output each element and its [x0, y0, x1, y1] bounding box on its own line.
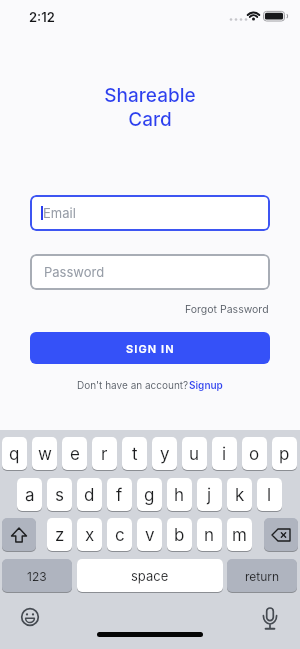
button[interactable]: q [2, 437, 27, 471]
button[interactable]: e [62, 437, 87, 471]
button[interactable]: h [167, 478, 192, 512]
button[interactable]: r [92, 437, 117, 471]
staticText: h [174, 485, 185, 506]
button[interactable]: o [242, 437, 267, 471]
button[interactable]: p [272, 437, 297, 471]
button[interactable]: c [107, 518, 132, 552]
staticText: i [222, 444, 227, 465]
staticText: SIGN IN [126, 342, 175, 355]
button[interactable]: Forgot Password [185, 303, 269, 316]
button[interactable]: a [17, 478, 42, 512]
button[interactable]: space [77, 559, 223, 593]
staticText: m [232, 525, 247, 546]
button[interactable] [2, 518, 36, 552]
button[interactable]: b [167, 518, 192, 552]
button[interactable] [264, 518, 298, 552]
button[interactable]: 123 [2, 559, 72, 593]
staticText: p [279, 444, 290, 465]
button[interactable]: n [197, 518, 222, 552]
staticText: 2:12 [29, 9, 55, 25]
button[interactable]: x [77, 518, 102, 552]
staticText: g [144, 485, 155, 506]
staticText: y [160, 444, 170, 465]
staticText: space [131, 568, 169, 584]
button[interactable]: t [122, 437, 147, 471]
staticText: f [116, 485, 123, 506]
staticText: d [84, 485, 95, 506]
staticText: r [101, 444, 108, 465]
staticText: Signup [189, 379, 223, 391]
button[interactable]: u [182, 437, 207, 471]
button[interactable]: z [47, 518, 72, 552]
button[interactable]: y [152, 437, 177, 471]
button[interactable]: i [212, 437, 237, 471]
button[interactable]: w [32, 437, 57, 471]
staticText: Email [43, 205, 76, 221]
button[interactable] [256, 606, 284, 636]
button[interactable]: f [107, 478, 132, 512]
staticText: Forgot Password [185, 303, 269, 316]
staticText: Don't have an account? [77, 379, 189, 391]
staticText: o [249, 444, 260, 465]
staticText: b [174, 525, 185, 546]
button[interactable]: d [77, 478, 102, 512]
staticText: v [145, 525, 155, 546]
staticText: Password [44, 264, 105, 280]
staticText: return [245, 569, 280, 584]
staticText: s [55, 485, 64, 506]
button[interactable] [16, 603, 44, 631]
button[interactable]: g [137, 478, 162, 512]
staticText: k [235, 485, 245, 506]
button[interactable]: v [137, 518, 162, 552]
staticText: Shareable Card [104, 84, 196, 131]
staticText: 123 [27, 569, 47, 584]
staticText: l [267, 485, 272, 506]
staticText: u [189, 444, 200, 465]
button[interactable]: m [227, 518, 252, 552]
button[interactable]: SIGN IN [30, 332, 270, 364]
button[interactable]: Password [30, 254, 270, 290]
button[interactable]: return [227, 559, 297, 593]
staticText: e [70, 444, 80, 465]
staticText: n [204, 525, 215, 546]
button[interactable]: j [197, 478, 222, 512]
staticText: a [25, 485, 35, 506]
staticText: t [132, 444, 138, 465]
staticText: j [207, 485, 212, 506]
staticText: q [9, 444, 20, 465]
staticText: c [115, 525, 125, 546]
button[interactable]: Signup [189, 379, 223, 391]
button[interactable]: l [257, 478, 282, 512]
button[interactable]: s [47, 478, 72, 512]
button[interactable]: Email [30, 195, 270, 231]
staticText: x [85, 525, 95, 546]
staticText: z [55, 525, 65, 546]
staticText: w [38, 444, 52, 465]
button[interactable]: k [227, 478, 252, 512]
